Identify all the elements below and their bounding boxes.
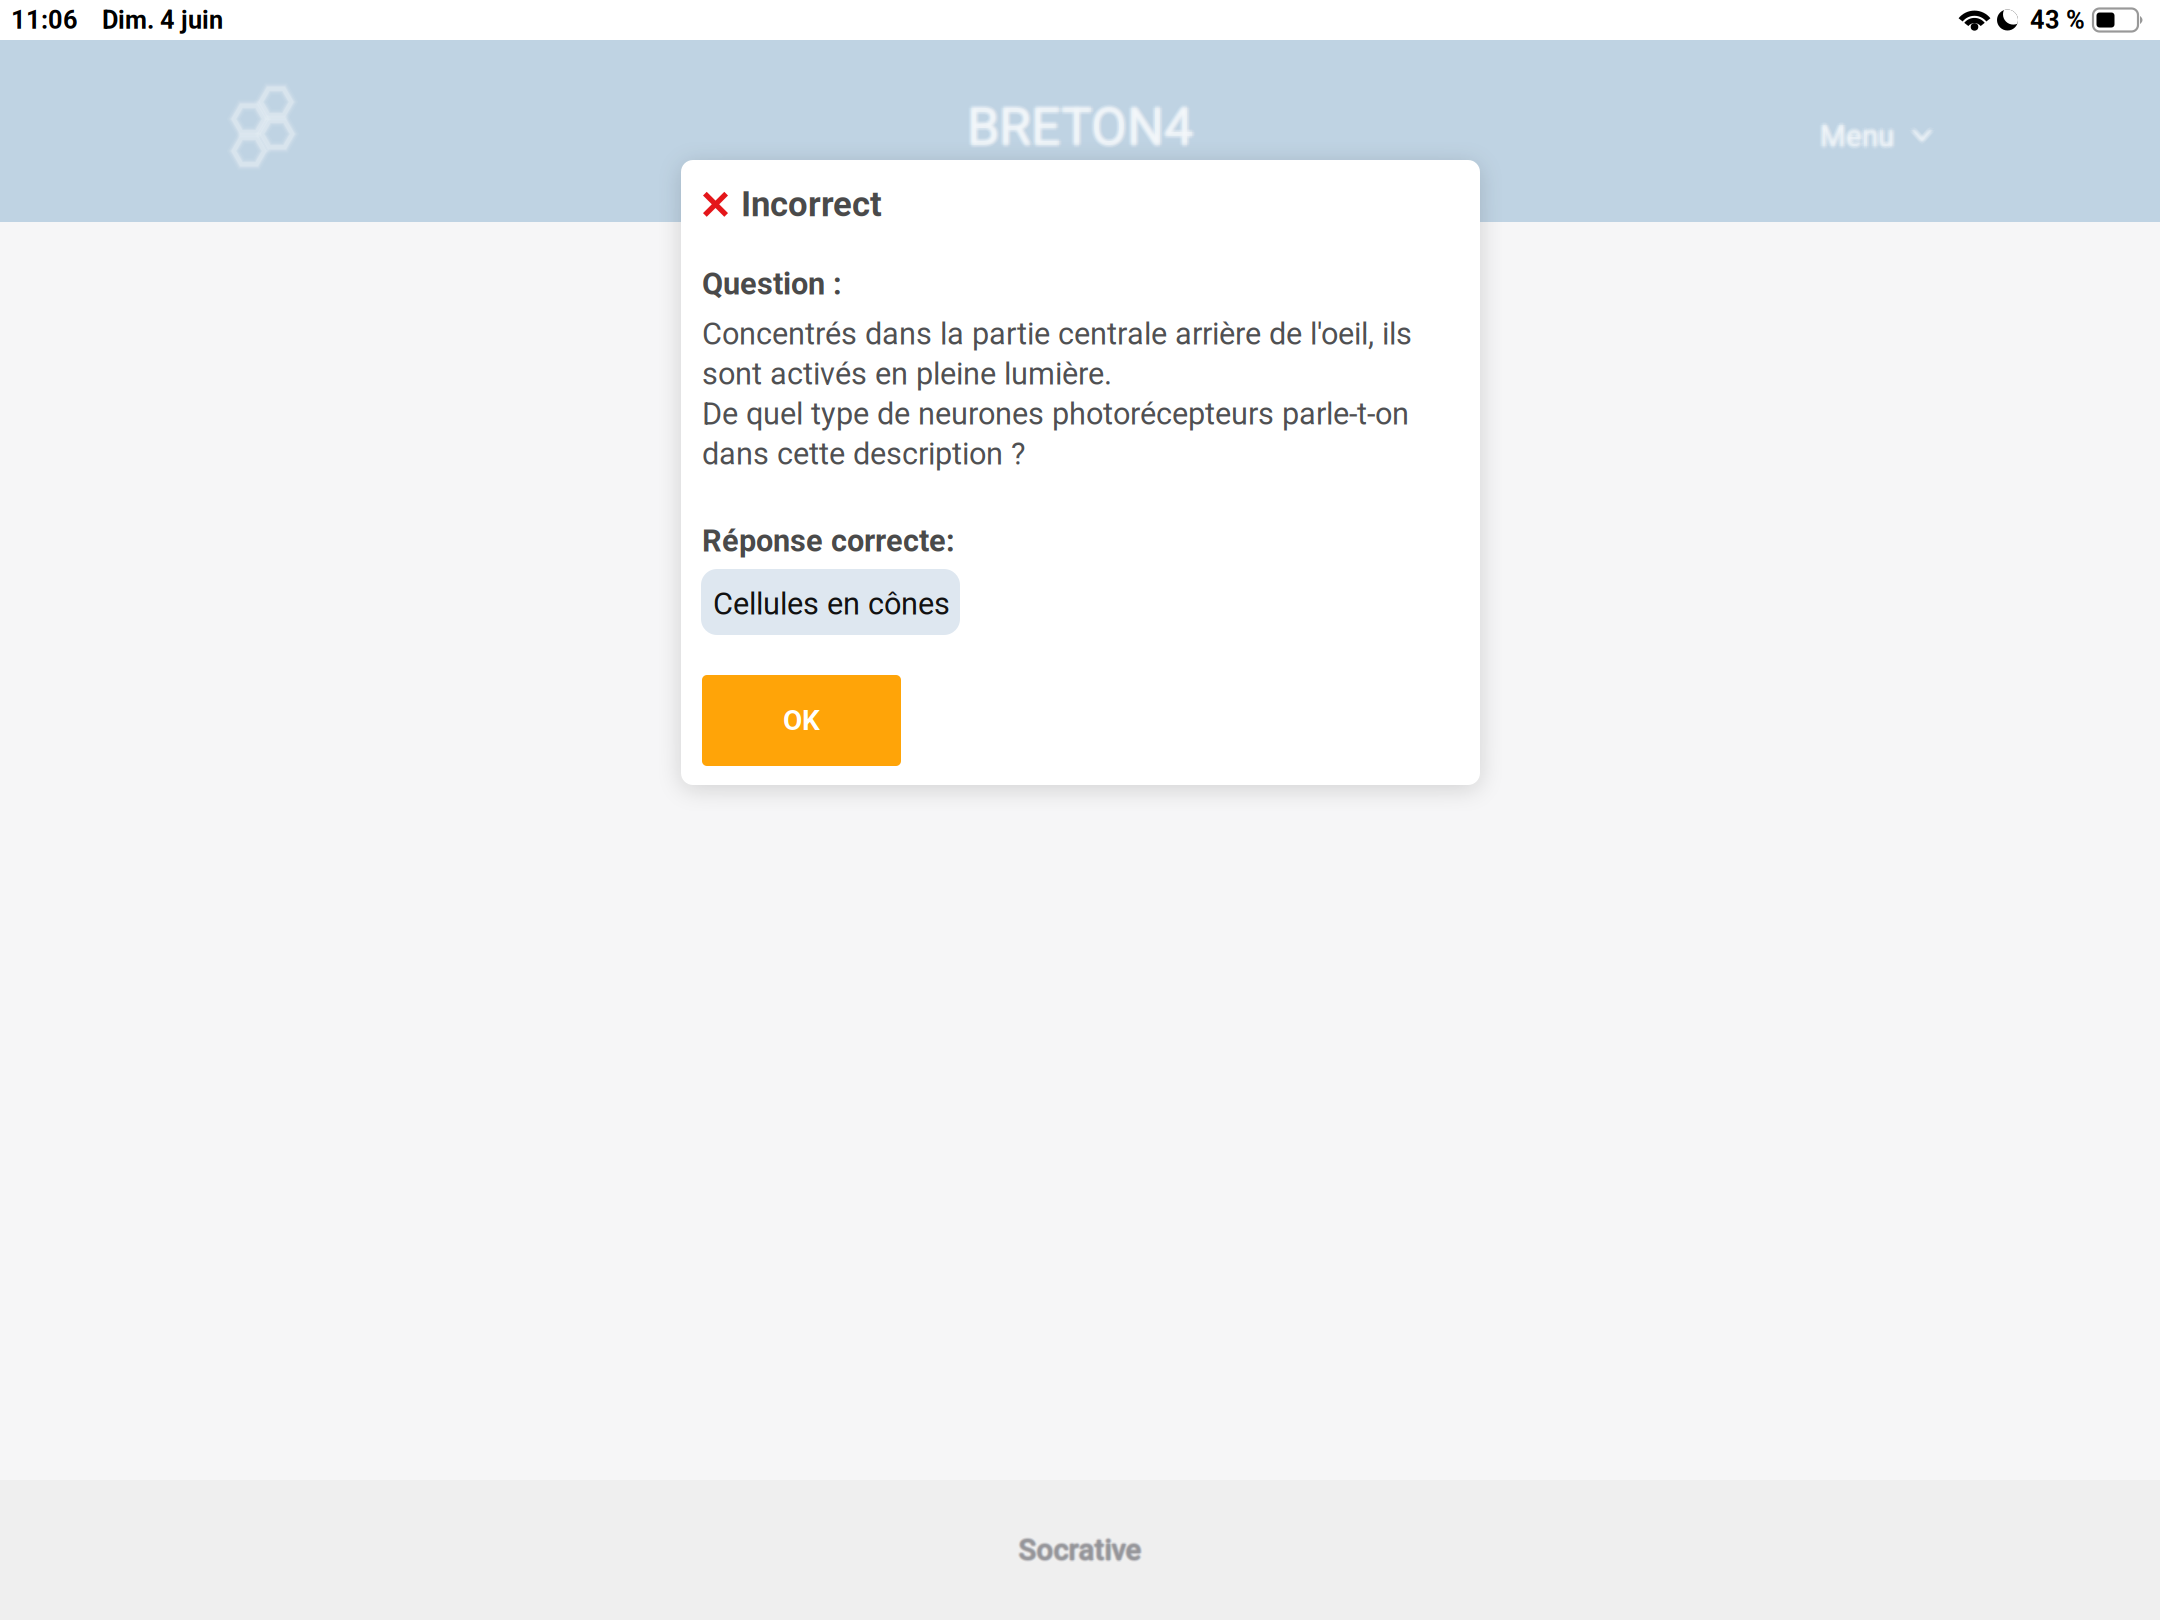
- staticText: Menu: [1820, 122, 1894, 156]
- staticText: BRETON4: [964, 96, 1190, 157]
- staticText: Socrative: [1018, 1535, 1141, 1569]
- staticText: BRETON4: [967, 99, 1193, 160]
- staticText: 11:06: [11, 5, 78, 35]
- staticText: OK: [783, 704, 820, 737]
- staticText: Socrative: [1020, 1532, 1143, 1566]
- staticText: BRETON4: [969, 94, 1195, 155]
- staticText: BRETON4: [965, 94, 1191, 155]
- staticText: BRETON4: [970, 96, 1196, 157]
- staticText: Socrative: [1018, 1533, 1141, 1567]
- button[interactable]: OK: [702, 675, 901, 766]
- staticText: Menu: [1823, 119, 1897, 153]
- staticText: Socrative: [1018, 1531, 1141, 1565]
- staticText: Réponse correcte:: [702, 523, 955, 559]
- staticText: Menu: [1820, 116, 1894, 150]
- staticText: Dim. 4 juin: [102, 5, 223, 35]
- staticText: Menu: [1818, 117, 1892, 151]
- staticText: Socrative: [1018, 1533, 1141, 1567]
- staticText: Concentrés dans la partie centrale arriè…: [702, 316, 1412, 352]
- staticText: De quel type de neurones photorécepteurs…: [702, 396, 1409, 432]
- staticText: Menu: [1821, 119, 1895, 153]
- staticText: Socrative: [1018, 1534, 1141, 1568]
- staticText: Menu: [1818, 121, 1892, 155]
- staticText: Menu: [1822, 117, 1896, 151]
- staticText: BRETON4: [967, 96, 1193, 157]
- staticText: Menu: [1817, 119, 1891, 153]
- staticText: Menu: [1819, 119, 1893, 153]
- staticText: sont activés en pleine lumière.: [702, 356, 1112, 392]
- staticText: Socrative: [1017, 1533, 1140, 1567]
- staticText: Menu: [1822, 121, 1896, 155]
- staticText: BRETON4: [967, 98, 1193, 159]
- staticText: Socrative: [1019, 1533, 1142, 1567]
- staticText: BRETON4: [969, 98, 1195, 159]
- staticText: BRETON4: [966, 96, 1192, 157]
- staticText: Socrative: [1017, 1532, 1140, 1566]
- staticText: Menu: [1820, 119, 1894, 153]
- staticText: BRETON4: [967, 95, 1193, 156]
- staticText: BRETON4: [967, 93, 1193, 154]
- staticText: 43 %: [2030, 5, 2085, 35]
- staticText: Menu: [1820, 120, 1894, 155]
- button[interactable]: Menu: [1806, 107, 1931, 153]
- staticText: Menu: [1820, 118, 1894, 152]
- staticText: Question :: [702, 266, 842, 302]
- staticText: Incorrect: [741, 184, 882, 225]
- staticText: BRETON4: [968, 96, 1194, 157]
- staticText: Socrative: [1018, 1532, 1141, 1566]
- staticText: BRETON4: [965, 98, 1191, 159]
- staticText: Cellules en cônes: [713, 586, 950, 622]
- staticText: Socrative: [1020, 1534, 1143, 1568]
- staticText: dans cette description ?: [702, 436, 1025, 472]
- staticText: Socrative: [1017, 1534, 1140, 1568]
- staticText: Socrative: [1020, 1533, 1143, 1567]
